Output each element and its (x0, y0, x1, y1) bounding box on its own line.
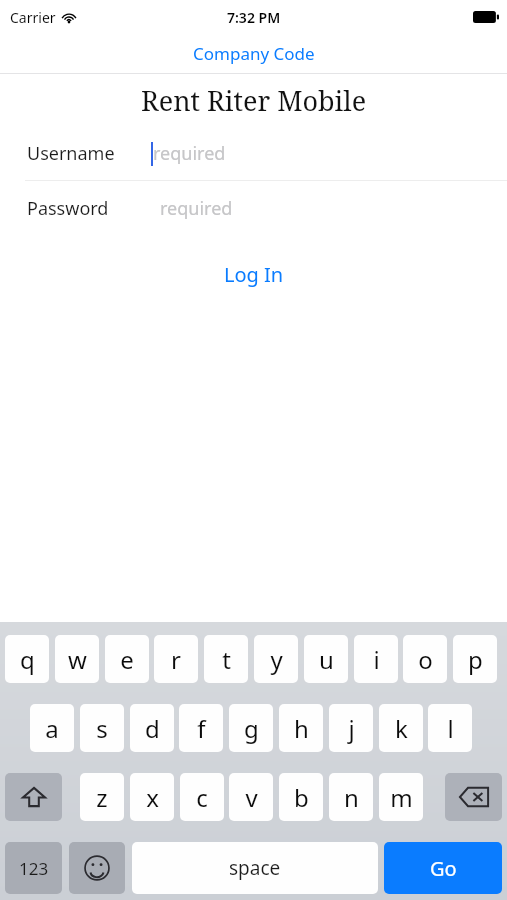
staticText: y (270, 643, 283, 676)
staticText: required (153, 141, 226, 166)
staticText: 123 (19, 857, 49, 880)
staticText: c (196, 781, 208, 814)
staticText: g (244, 712, 259, 745)
button[interactable]: h (279, 704, 323, 752)
button[interactable]: o (403, 635, 447, 683)
staticText: f (197, 712, 206, 745)
staticText: m (390, 781, 413, 814)
staticText: b (294, 781, 309, 814)
staticText: p (468, 643, 483, 676)
button[interactable]: j (329, 704, 373, 752)
staticText: Log In (224, 261, 284, 287)
button[interactable]: y (254, 635, 298, 683)
staticText: k (395, 712, 408, 745)
button[interactable]: p (453, 635, 497, 683)
button[interactable]: Company Code (0, 34, 507, 73)
button[interactable]: Emoji (69, 842, 125, 894)
button[interactable]: x (130, 773, 174, 821)
button[interactable]: 123 (5, 842, 62, 894)
button[interactable]: s (80, 704, 124, 752)
button[interactable]: k (379, 704, 423, 752)
staticText: r (171, 643, 181, 676)
button[interactable]: t (204, 635, 248, 683)
staticText: 7:32 PM (227, 8, 281, 27)
button[interactable]: e (105, 635, 149, 683)
button[interactable]: Password (0, 181, 507, 235)
staticText: space (229, 855, 281, 881)
staticText: h (294, 712, 309, 745)
staticText: required (160, 196, 233, 221)
button[interactable]: l (428, 704, 472, 752)
staticText: v (245, 781, 258, 814)
button[interactable]: m (379, 773, 423, 821)
button[interactable]: f (179, 704, 223, 752)
staticText: i (373, 643, 380, 676)
staticText: w (68, 643, 87, 676)
button[interactable]: u (304, 635, 348, 683)
staticText: q (20, 643, 35, 676)
button[interactable]: a (30, 704, 74, 752)
button[interactable]: Username (0, 126, 507, 180)
button[interactable]: n (329, 773, 373, 821)
staticText: e (120, 643, 134, 676)
button[interactable]: z (80, 773, 124, 821)
staticText: n (344, 781, 359, 814)
staticText: Username (27, 141, 115, 166)
button[interactable]: w (55, 635, 99, 683)
button[interactable]: Log In (206, 257, 302, 291)
staticText: z (96, 781, 108, 814)
button[interactable]: i (354, 635, 398, 683)
button[interactable]: g (229, 704, 273, 752)
staticText: a (45, 712, 59, 745)
staticText: Go (430, 855, 457, 882)
button[interactable]: q (5, 635, 49, 683)
staticText: Rent Riter Mobile (141, 82, 367, 119)
staticText: Carrier (10, 8, 56, 27)
staticText: j (348, 712, 355, 745)
staticText: Company Code (193, 42, 315, 65)
button[interactable]: r (154, 635, 198, 683)
button[interactable]: Shift (5, 773, 62, 821)
button[interactable]: Go (384, 842, 502, 894)
button[interactable]: b (279, 773, 323, 821)
staticText: u (319, 643, 334, 676)
staticText: d (145, 712, 160, 745)
staticText: o (418, 643, 433, 676)
button[interactable]: Backspace (445, 773, 502, 821)
button[interactable]: d (130, 704, 174, 752)
staticText: s (96, 712, 108, 745)
staticText: t (222, 643, 231, 676)
staticText: x (146, 781, 159, 814)
button[interactable]: c (180, 773, 224, 821)
staticText: Password (27, 196, 109, 221)
button[interactable]: v (229, 773, 273, 821)
button[interactable]: space (132, 842, 378, 894)
staticText: l (447, 712, 454, 745)
